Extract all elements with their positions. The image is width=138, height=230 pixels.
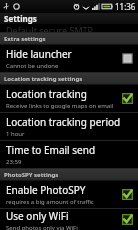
staticText: Hide launcher: [6, 47, 72, 61]
staticText: 23:59: [6, 158, 22, 166]
staticText: Time to Email send: [6, 143, 96, 157]
staticText: Enable PhotoSPY: [6, 183, 86, 197]
button[interactable]: Checked: [122, 93, 133, 104]
staticText: Default secure SMTP: [6, 24, 94, 33]
staticText: Location tracking period: [6, 115, 121, 129]
button[interactable]: Checked: [122, 189, 133, 200]
button[interactable]: Use only WiFi: [0, 209, 138, 230]
staticText: PhotoSPY settings: [4, 171, 59, 179]
staticText: 11:36: [115, 1, 136, 12]
staticText: 1 hour: [6, 130, 25, 138]
button[interactable]: Enable PhotoSPY: [0, 181, 138, 208]
staticText: Use only WiFi: [6, 209, 69, 223]
staticText: Extra settings: [4, 35, 46, 43]
button[interactable]: Location tracking: [0, 85, 138, 112]
button[interactable]: Location tracking period: [0, 113, 138, 140]
button[interactable]: Checked: [122, 214, 133, 225]
button[interactable]: Time to Email send: [0, 141, 138, 168]
staticText: requires a big amount of traffic: [6, 198, 94, 206]
staticText: Receive links to google maps on email: [6, 102, 114, 110]
staticText: Location tracking settings: [4, 75, 83, 83]
staticText: Cannot be undone: [6, 62, 59, 70]
button[interactable]: Default secure SMTP: [0, 24, 138, 33]
staticText: Settings: [4, 13, 37, 24]
button[interactable]: Hide launcher: [0, 45, 138, 72]
button[interactable]: Unchecked: [122, 53, 133, 64]
staticText: Location tracking: [6, 87, 87, 101]
staticText: Send photos only via WiFi: [6, 224, 78, 230]
